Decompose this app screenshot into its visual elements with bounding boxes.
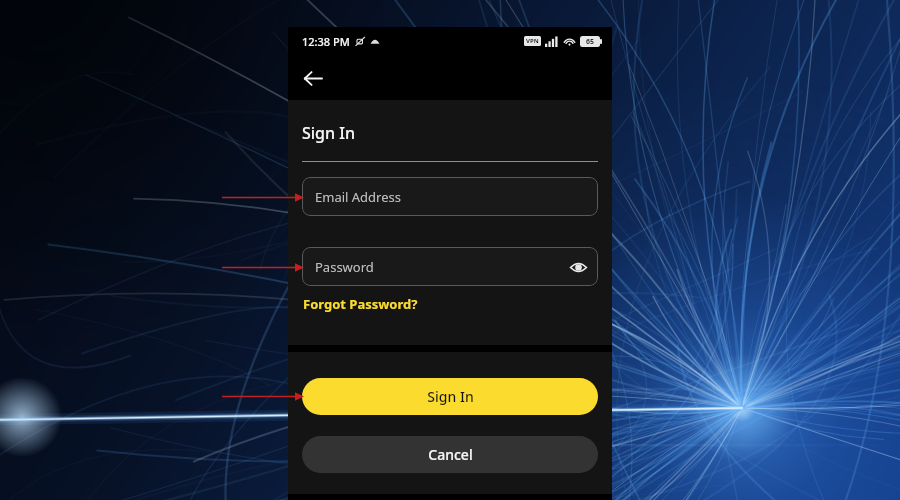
button[interactable]: Cancel (302, 436, 598, 473)
staticText: Email Address (315, 188, 401, 206)
staticText: 12:38 PM (302, 34, 350, 49)
staticText: Password (315, 258, 374, 276)
staticText: VPN (526, 37, 539, 45)
button[interactable]: Show password (563, 252, 593, 282)
button[interactable]: Password (302, 247, 598, 286)
button[interactable]: Sign In (302, 378, 598, 415)
button[interactable]: Back (293, 58, 333, 98)
button[interactable]: Email Address (302, 177, 598, 216)
staticText: 65 (586, 37, 595, 47)
staticText: Forgot Password? (303, 295, 418, 313)
staticText: Sign In (302, 122, 355, 144)
staticText: Cancel (428, 445, 473, 464)
button[interactable]: Forgot Password? (302, 292, 419, 316)
staticText: Sign In (427, 387, 474, 406)
